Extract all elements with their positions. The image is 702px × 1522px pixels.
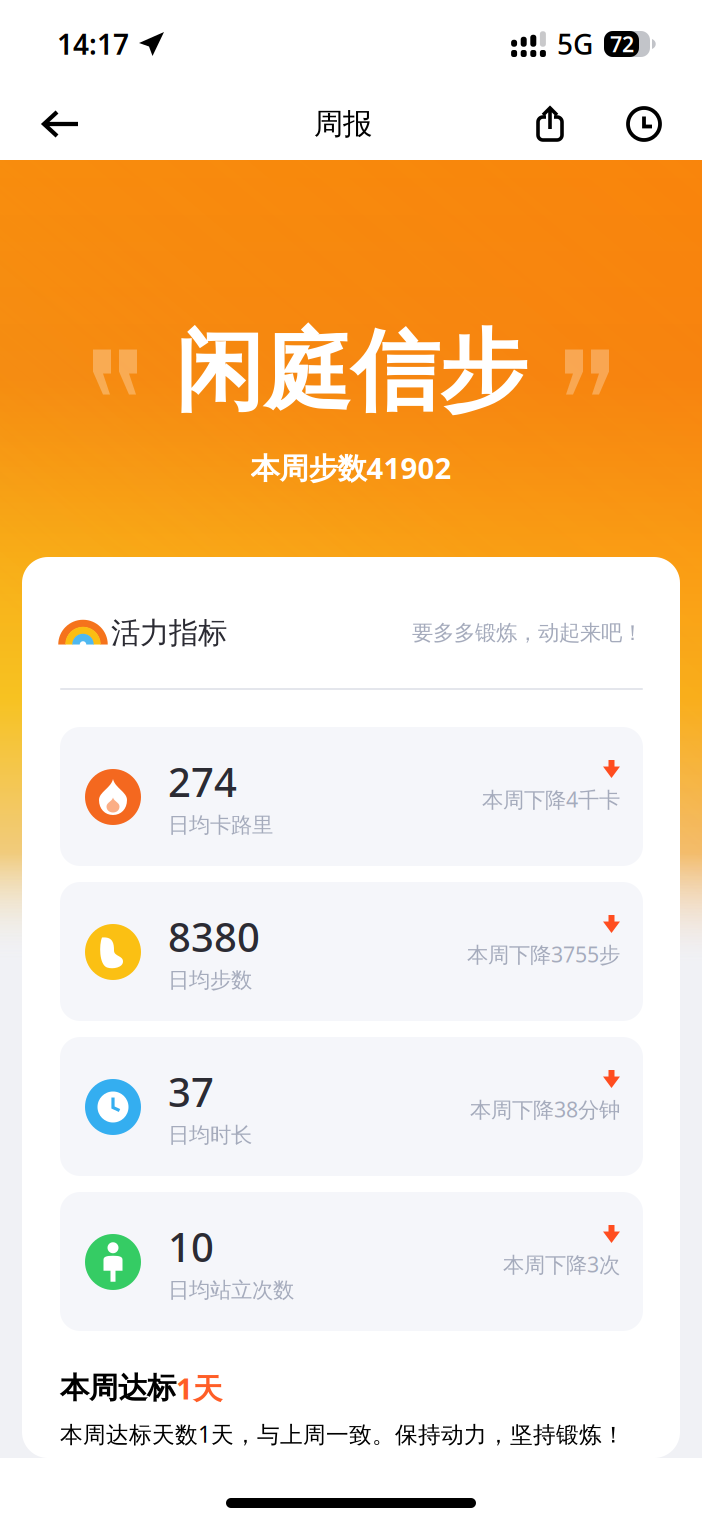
staticText: 本周达标天数1天，与上周一致。保持动力，坚持锻炼！ (60, 1419, 625, 1449)
staticText: 274 (168, 755, 237, 808)
staticText: 本周步数41902 (250, 448, 451, 487)
staticText: 14:17 (57, 25, 129, 63)
staticText: 本周下降3755步 (467, 940, 620, 968)
button[interactable]: 分享 (514, 88, 586, 160)
button[interactable]: 返回 (25, 88, 97, 160)
button[interactable]: 8380 (60, 882, 643, 1021)
staticText: 活力指标 (111, 615, 227, 651)
staticText: 本周达标 (60, 1370, 176, 1406)
button[interactable]: 历史记录 (608, 88, 680, 160)
staticText: 5G (557, 25, 593, 63)
staticText: 10 (168, 1220, 214, 1273)
staticText: 72 (610, 30, 634, 58)
staticText: 日均时长 (168, 1122, 252, 1148)
staticText: 日均站立次数 (168, 1277, 294, 1303)
button[interactable]: 37 (60, 1037, 643, 1176)
staticText: 日均卡路里 (168, 812, 273, 838)
staticText: 1天 (176, 1368, 222, 1407)
staticText: 本周下降4千卡 (482, 785, 620, 813)
staticText: 37 (168, 1065, 214, 1118)
staticText: 要多多锻炼，动起来吧！ (412, 620, 643, 646)
staticText: 周报 (314, 106, 372, 142)
staticText: 本周下降38分钟 (470, 1095, 620, 1123)
staticText: 日均步数 (168, 967, 252, 993)
staticText: 8380 (168, 910, 260, 963)
button[interactable]: 10 (60, 1192, 643, 1331)
button[interactable]: 274 (60, 727, 643, 866)
staticText: 闲庭信步 (175, 318, 527, 426)
staticText: 本周下降3次 (503, 1250, 620, 1278)
